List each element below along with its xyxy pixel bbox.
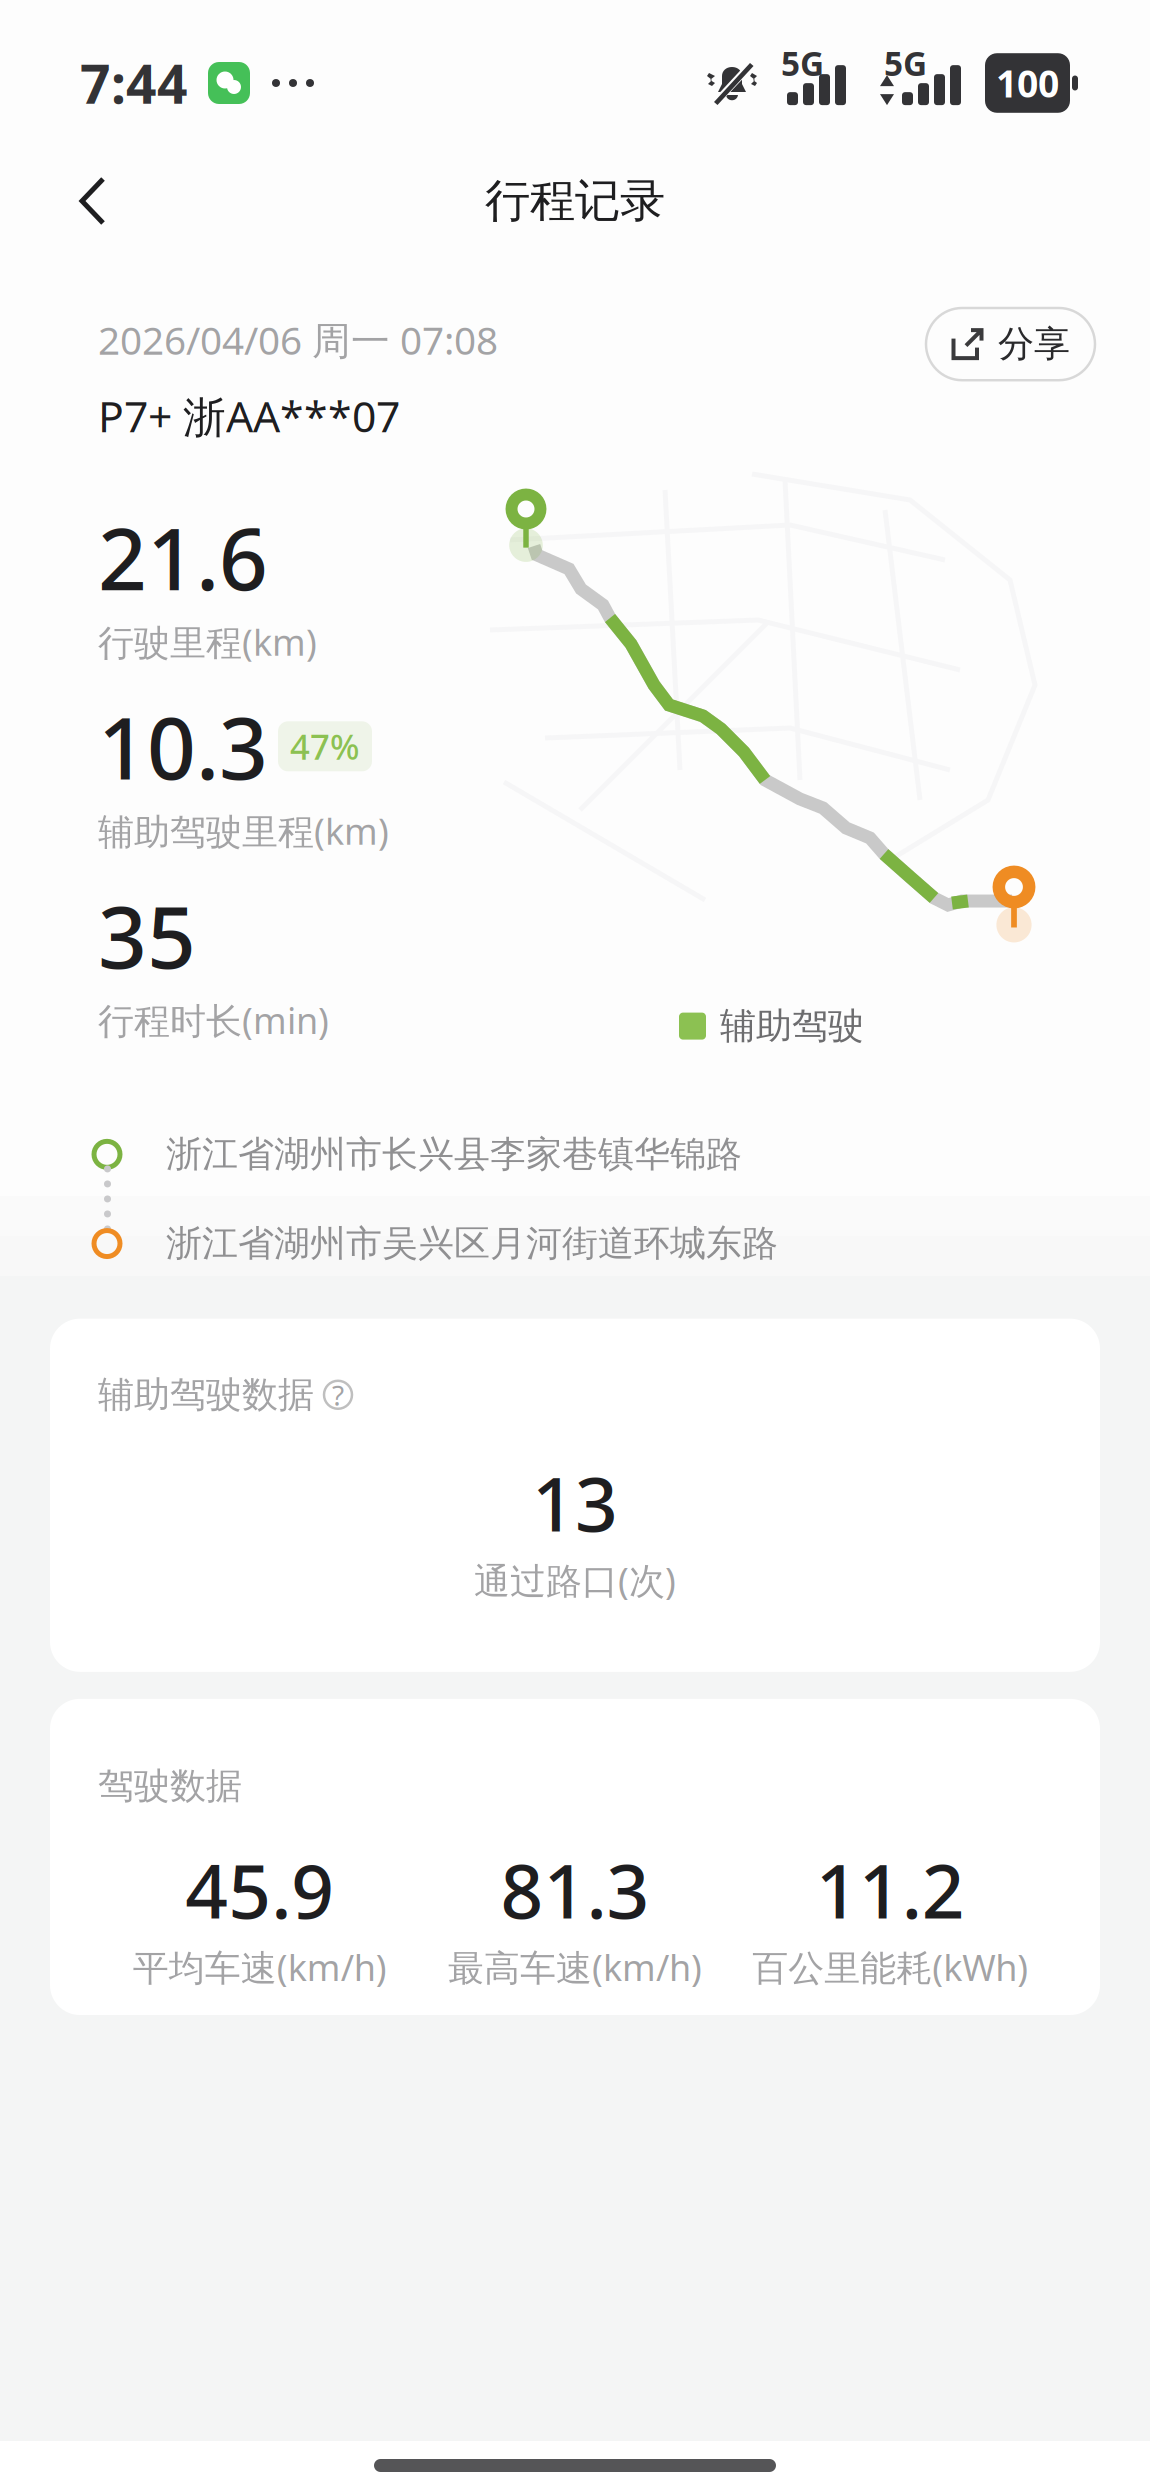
staticText: 81.3: [500, 1840, 649, 1939]
staticText: 辅助驾驶: [720, 1004, 864, 1048]
staticText: P7+ 浙AA***07: [98, 387, 400, 444]
staticText: 5G: [884, 41, 927, 85]
staticText: 100: [996, 58, 1059, 108]
staticText: 浙江省湖州市吴兴区月河街道环城东路: [166, 1221, 778, 1266]
staticText: 行驶里程(km): [98, 618, 317, 666]
staticText: 辅助驾驶数据: [98, 1373, 314, 1417]
staticText: 5G: [781, 41, 824, 85]
staticText: 平均车速(km/h): [133, 1943, 387, 1991]
staticText: 10.3: [98, 690, 268, 803]
staticText: 2026/04/06 周一 07:08: [98, 314, 498, 365]
staticText: 行程时长(min): [98, 996, 329, 1044]
staticText: 21.6: [98, 500, 268, 614]
staticText: 驾驶数据: [98, 1764, 242, 1808]
staticText: 浙江省湖州市长兴县李家巷镇华锦路: [166, 1132, 742, 1176]
staticText: 35: [98, 879, 196, 992]
staticText: 百公里能耗(kWh): [752, 1943, 1028, 1991]
staticText: 辅助驾驶里程(km): [98, 807, 389, 855]
staticText: 通过路口(次): [474, 1556, 676, 1604]
staticText: 7:44: [80, 48, 188, 118]
staticText: 45.9: [185, 1840, 334, 1939]
staticText: 13: [532, 1453, 618, 1552]
staticText: 最高车速(km/h): [448, 1943, 702, 1991]
button[interactable]: Back: [48, 154, 137, 248]
staticText: 11.2: [816, 1840, 965, 1939]
button[interactable]: 分享: [926, 308, 1095, 380]
staticText: 行程记录: [485, 173, 665, 229]
staticText: 分享: [998, 322, 1070, 366]
staticText: 47%: [290, 723, 360, 769]
staticText: ?: [332, 1376, 344, 1413]
